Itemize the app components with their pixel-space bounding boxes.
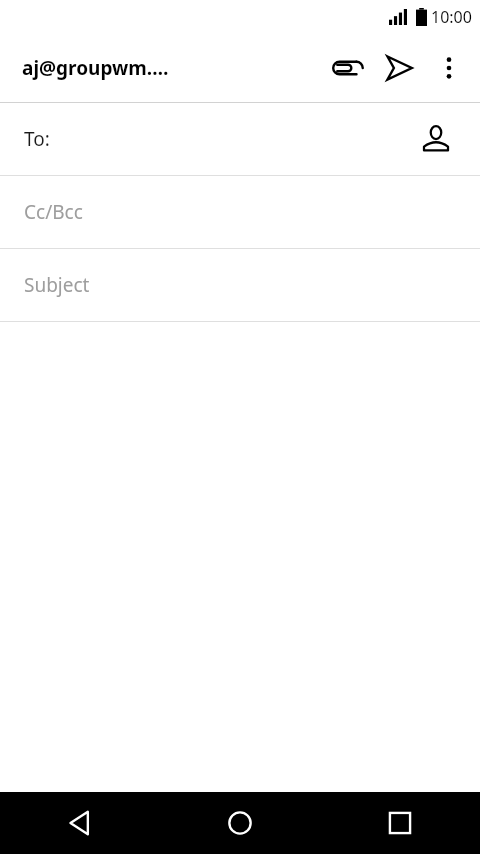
button[interactable]: Attach file (320, 34, 372, 102)
button[interactable]: To: (0, 103, 480, 175)
button[interactable]: Send (372, 34, 426, 102)
staticText: aj@groupwm.co… (22, 55, 171, 81)
button[interactable]: Home (160, 792, 320, 854)
button[interactable]: Add from contacts (412, 115, 460, 163)
staticText: 10:00 (431, 6, 472, 28)
button[interactable]: Recent apps (320, 792, 480, 854)
button[interactable]: Subject (0, 249, 480, 321)
staticText: To: (24, 126, 50, 152)
button[interactable]: More options (426, 34, 472, 102)
button[interactable]: Cc/Bcc (0, 176, 480, 248)
staticText: Subject (24, 272, 90, 298)
button[interactable]: Back (0, 792, 160, 854)
button[interactable]: aj@groupwm.co… (22, 55, 171, 81)
staticText: Cc/Bcc (24, 199, 83, 225)
